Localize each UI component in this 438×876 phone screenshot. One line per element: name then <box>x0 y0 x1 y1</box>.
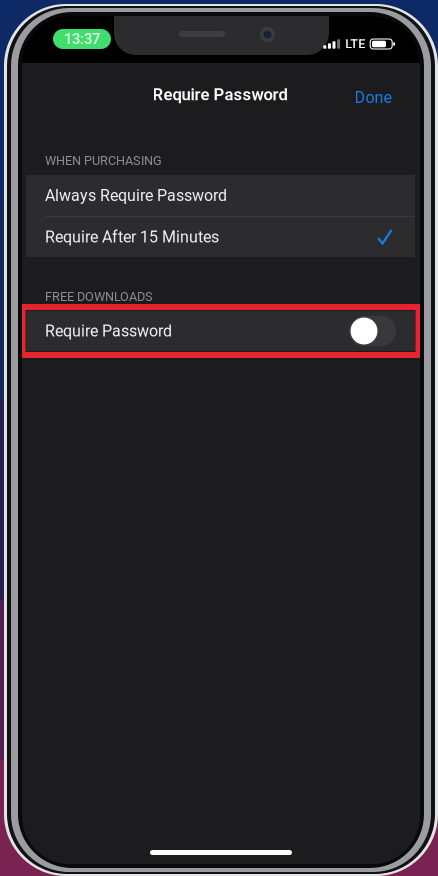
staticText: Always Require Password <box>45 186 227 205</box>
button[interactable]: Done <box>345 75 401 119</box>
button[interactable]: Require After 15 Minutes <box>26 217 415 257</box>
staticText: 13:37 <box>64 30 100 48</box>
staticText: Done <box>354 88 391 107</box>
staticText: WHEN PURCHASING <box>45 153 162 168</box>
staticText: Require After 15 Minutes <box>45 228 219 246</box>
staticText: Require Password <box>152 85 287 104</box>
button[interactable]: Always Require Password <box>26 175 415 216</box>
staticText: LTE <box>345 37 365 51</box>
staticText: FREE DOWNLOADS <box>45 289 153 304</box>
staticText: Require Password <box>45 322 172 340</box>
button[interactable]: Require Password <box>26 311 415 351</box>
